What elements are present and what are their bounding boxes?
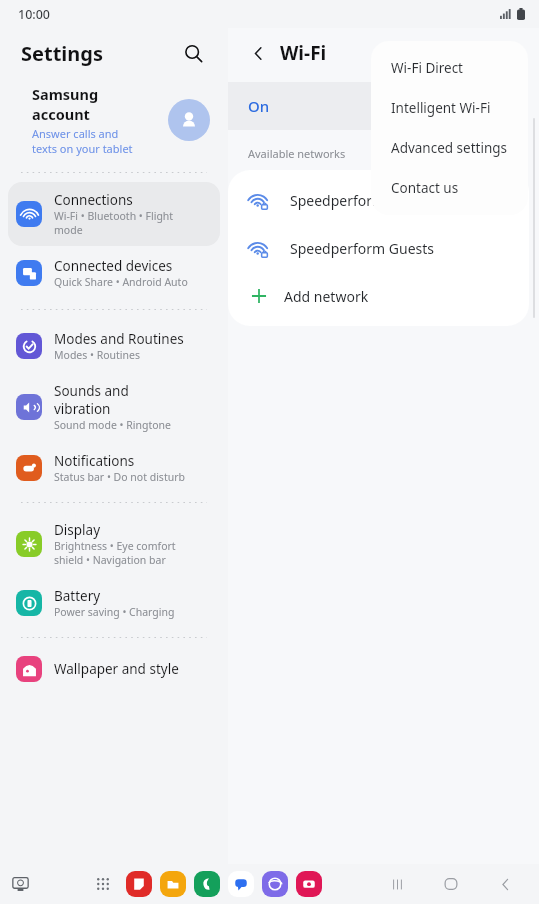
- button[interactable]: Recents panel: [4, 868, 36, 900]
- staticText: Add network: [284, 287, 369, 306]
- button[interactable]: Advanced settings: [371, 128, 528, 168]
- button[interactable]: Add network: [228, 272, 529, 320]
- button[interactable]: Speedperform: [228, 176, 529, 224]
- staticText: Notifications: [54, 452, 135, 470]
- button[interactable]: Contact us: [371, 168, 528, 208]
- button[interactable]: gallery: [296, 871, 322, 897]
- staticText: Connected devices: [54, 257, 173, 275]
- staticText: Settings: [21, 40, 103, 67]
- button[interactable]: Sounds and vibration: [8, 373, 220, 441]
- button[interactable]: Notifications: [8, 443, 220, 493]
- staticText: Brightness • Eye comfort shield • Naviga…: [54, 539, 176, 567]
- button[interactable]: Home: [433, 866, 469, 902]
- button[interactable]: Samsung account: [0, 78, 228, 166]
- staticText: Samsung account: [32, 84, 99, 124]
- staticText: Power saving • Charging: [54, 605, 175, 619]
- staticText: 10:00: [18, 6, 51, 23]
- button[interactable]: phone: [194, 871, 220, 897]
- button[interactable]: On: [228, 82, 514, 130]
- staticText: Available networks: [248, 146, 346, 161]
- button[interactable]: Back: [487, 866, 523, 902]
- staticText: Wi-Fi • Bluetooth • Flight mode: [54, 209, 174, 237]
- staticText: Modes and Routines: [54, 330, 184, 348]
- staticText: Battery: [54, 587, 101, 605]
- button[interactable]: Search: [176, 36, 210, 70]
- staticText: Wallpaper and style: [54, 660, 179, 678]
- button[interactable]: Display: [8, 512, 220, 576]
- button[interactable]: Apps: [88, 869, 118, 899]
- staticText: Wi-Fi: [280, 40, 327, 66]
- staticText: Answer calls and texts on your tablet: [32, 126, 133, 156]
- staticText: Wi-Fi Direct: [391, 59, 463, 77]
- button[interactable]: Wallpaper and style: [8, 647, 220, 691]
- button[interactable]: Intelligent Wi-Fi: [371, 88, 528, 128]
- button[interactable]: Wi-Fi Direct: [371, 48, 528, 88]
- staticText: Display: [54, 521, 101, 539]
- button[interactable]: Recents: [379, 866, 415, 902]
- staticText: Quick Share • Android Auto: [54, 275, 188, 289]
- button[interactable]: files: [160, 871, 186, 897]
- staticText: Contact us: [391, 179, 459, 197]
- staticText: Sounds and vibration: [54, 382, 129, 418]
- button[interactable]: Profile: [168, 99, 210, 141]
- staticText: Advanced settings: [391, 139, 508, 157]
- staticText: On: [248, 96, 270, 116]
- button[interactable]: Speedperform Guests: [228, 224, 529, 272]
- button[interactable]: Connections: [8, 182, 220, 246]
- button[interactable]: Battery: [8, 578, 220, 628]
- staticText: Modes • Routines: [54, 348, 141, 362]
- button[interactable]: Modes and Routines: [8, 321, 220, 371]
- staticText: Intelligent Wi-Fi: [391, 99, 491, 117]
- button[interactable]: internet: [262, 871, 288, 897]
- staticText: Speedperform: [290, 191, 386, 210]
- button[interactable]: Back: [242, 37, 274, 69]
- staticText: Connections: [54, 191, 133, 209]
- button[interactable]: Connected devices: [8, 248, 220, 298]
- staticText: Sound mode • Ringtone: [54, 418, 171, 432]
- staticText: Status bar • Do not disturb: [54, 470, 185, 484]
- staticText: Speedperform Guests: [290, 239, 434, 258]
- button[interactable]: messages: [228, 871, 254, 897]
- button[interactable]: notes: [126, 871, 152, 897]
